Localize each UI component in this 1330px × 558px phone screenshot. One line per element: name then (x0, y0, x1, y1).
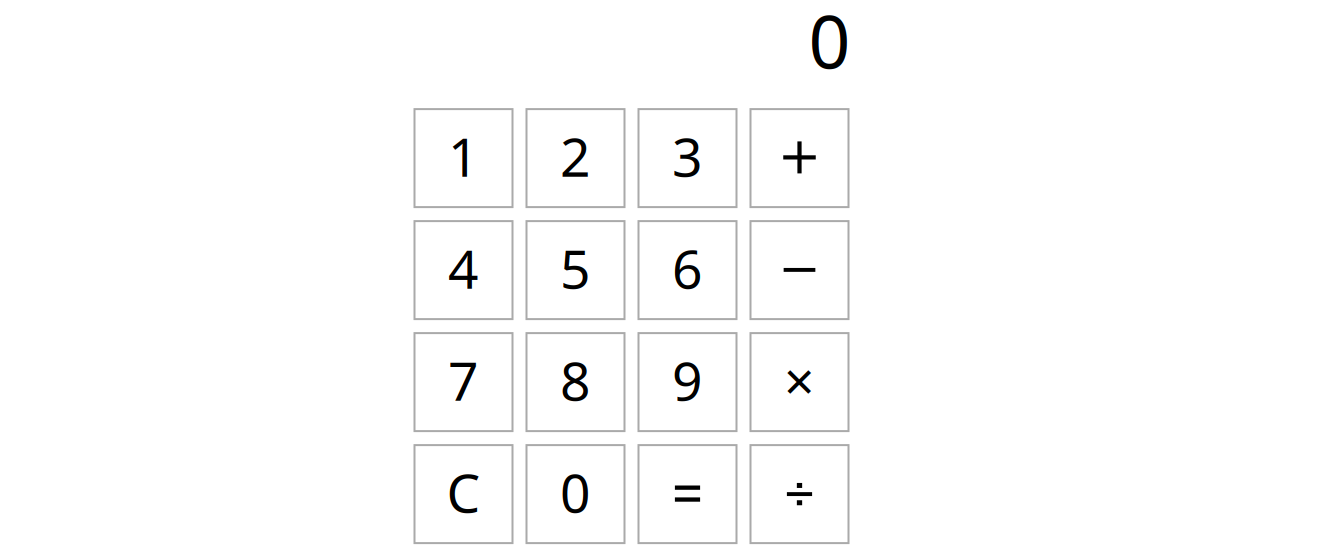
button[interactable]: Minus (750, 221, 848, 319)
button[interactable]: 5 (526, 221, 624, 319)
button[interactable]: 1 (414, 109, 512, 207)
staticText: 0 (560, 457, 591, 527)
staticText: 5 (560, 233, 591, 303)
staticText: 9 (672, 345, 703, 415)
button[interactable]: 6 (638, 221, 736, 319)
button[interactable]: C (414, 445, 512, 543)
staticText: C (446, 457, 480, 527)
staticText: 6 (672, 233, 703, 303)
staticText: 4 (448, 233, 479, 303)
staticText: 2 (560, 121, 591, 191)
staticText: 7 (448, 345, 479, 415)
button[interactable]: 7 (414, 333, 512, 431)
button[interactable]: Equals (638, 445, 736, 543)
button[interactable]: Multiply (750, 333, 848, 431)
button[interactable]: 0 (526, 445, 624, 543)
staticText: 3 (672, 121, 703, 191)
button[interactable]: 2 (526, 109, 624, 207)
staticText: 0 (808, 0, 850, 89)
staticText: × (784, 345, 815, 415)
button[interactable]: 8 (526, 333, 624, 431)
button[interactable]: 4 (414, 221, 512, 319)
staticText: 1 (448, 121, 479, 191)
button[interactable]: Plus (750, 109, 848, 207)
button[interactable]: Divide (750, 445, 848, 543)
button[interactable]: 3 (638, 109, 736, 207)
staticText: 8 (560, 345, 591, 415)
button[interactable]: 9 (638, 333, 736, 431)
